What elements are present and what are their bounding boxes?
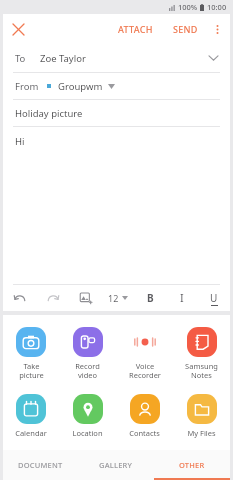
button[interactable]: I <box>166 285 198 311</box>
staticText: B <box>147 291 154 305</box>
staticText: Contacts <box>129 428 160 438</box>
staticText: U <box>210 291 218 305</box>
button[interactable]: SEND <box>167 17 204 41</box>
staticText: ATTACH <box>118 23 153 35</box>
button[interactable]: Voice Recorder <box>116 325 173 382</box>
button[interactable]: Undo <box>3 285 36 311</box>
staticText: 10:00 <box>207 2 227 12</box>
staticText: My Files <box>187 428 216 438</box>
button[interactable]: Insert image <box>69 285 102 311</box>
staticText: 12 <box>108 292 119 304</box>
staticText: I <box>180 291 184 305</box>
button[interactable]: 12 <box>102 285 134 311</box>
button[interactable]: Samsung Notes <box>173 325 230 382</box>
staticText: Take picture <box>19 361 44 380</box>
staticText: Groupwm <box>58 80 103 93</box>
staticText: Hi <box>15 135 25 148</box>
staticText: Holiday picture <box>15 107 83 120</box>
staticText: Voice Recorder <box>129 361 161 380</box>
staticText: GALLERY <box>99 460 133 470</box>
button[interactable]: From <box>3 73 230 99</box>
button[interactable]: ATTACH <box>112 17 159 41</box>
staticText: OTHER <box>179 460 205 470</box>
button[interactable]: U <box>198 285 230 311</box>
staticText: DOCUMENT <box>18 460 63 470</box>
button[interactable]: Take picture <box>3 325 59 382</box>
staticText: SEND <box>173 23 198 35</box>
staticText: 100% <box>178 2 198 12</box>
button[interactable]: To <box>3 44 230 72</box>
button[interactable]: Record video <box>59 325 116 382</box>
button[interactable]: B <box>134 285 166 311</box>
button[interactable]: My Files <box>173 392 230 440</box>
staticText: From <box>15 80 39 93</box>
staticText: Samsung Notes <box>185 361 218 380</box>
button[interactable]: OTHER <box>154 450 230 480</box>
button[interactable]: DOCUMENT <box>3 450 78 480</box>
button[interactable]: Redo <box>36 285 69 311</box>
staticText: Record video <box>75 361 100 380</box>
button[interactable]: Holiday picture <box>3 100 230 126</box>
button[interactable]: Location <box>59 392 116 440</box>
staticText: To <box>15 52 26 65</box>
staticText: Location <box>72 428 103 438</box>
button[interactable]: Contacts <box>116 392 173 440</box>
button[interactable]: Close <box>3 14 33 44</box>
staticText: Zoe Taylor <box>40 52 86 65</box>
staticText: Calendar <box>15 428 47 438</box>
button[interactable]: GALLERY <box>78 450 154 480</box>
button[interactable]: Hi <box>3 127 230 284</box>
button[interactable]: Calendar <box>3 392 59 440</box>
button[interactable]: More options <box>204 16 230 42</box>
